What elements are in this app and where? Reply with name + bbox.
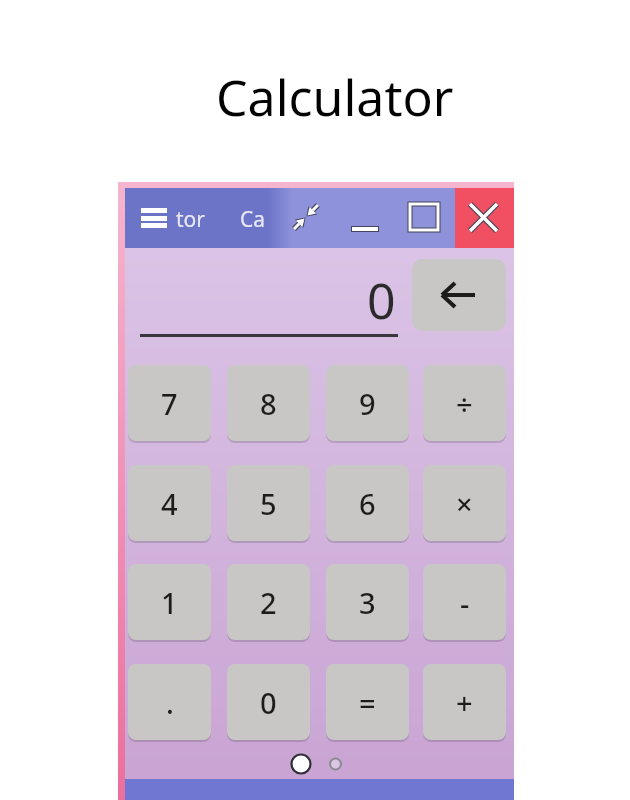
staticText: 8 <box>260 384 277 423</box>
staticText: Ca <box>240 205 266 234</box>
button[interactable]: 6 <box>326 465 409 541</box>
staticText: 9 <box>359 384 376 423</box>
staticText: 6 <box>359 484 376 523</box>
button[interactable] <box>292 203 320 231</box>
button[interactable] <box>348 222 382 236</box>
button[interactable]: - <box>423 564 506 640</box>
button[interactable]: 0 <box>227 664 310 740</box>
button[interactable] <box>412 259 506 331</box>
button[interactable]: + <box>423 664 506 740</box>
staticText: × <box>456 484 473 523</box>
staticText: tor <box>176 205 205 234</box>
staticText: 7 <box>161 384 178 423</box>
staticText: = <box>359 683 376 722</box>
staticText: - <box>460 583 470 622</box>
button[interactable]: 4 <box>128 465 211 541</box>
staticText: 5 <box>260 484 277 523</box>
button[interactable]: 9 <box>326 365 409 441</box>
staticText: ÷ <box>456 384 473 423</box>
button[interactable]: 2 <box>227 564 310 640</box>
staticText: 3 <box>359 583 376 622</box>
button[interactable]: 8 <box>227 365 310 441</box>
button[interactable]: × <box>423 465 506 541</box>
staticText: . <box>166 683 174 722</box>
staticText: 2 <box>260 583 277 622</box>
button[interactable]: = <box>326 664 409 740</box>
staticText: 0 <box>367 266 396 334</box>
button[interactable]: . <box>128 664 211 740</box>
button[interactable]: 7 <box>128 365 211 441</box>
button[interactable] <box>455 188 514 248</box>
button[interactable] <box>141 208 167 228</box>
button[interactable]: ÷ <box>423 365 506 441</box>
staticText: 0 <box>260 683 277 722</box>
staticText: 4 <box>161 484 178 523</box>
button[interactable]: 5 <box>227 465 310 541</box>
staticText: Calculator <box>216 63 454 131</box>
button[interactable]: 1 <box>128 564 211 640</box>
staticText: + <box>456 683 473 722</box>
staticText: 1 <box>161 583 178 622</box>
button[interactable]: 3 <box>326 564 409 640</box>
button[interactable] <box>409 203 439 231</box>
